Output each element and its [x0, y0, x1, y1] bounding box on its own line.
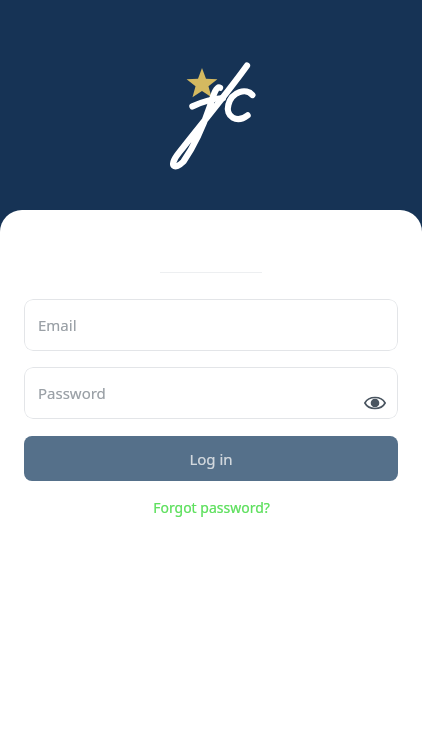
- staticText: Log in: [189, 449, 233, 469]
- button[interactable]: Forgot password?: [0, 494, 422, 520]
- staticText: Email: [38, 315, 77, 335]
- button[interactable]: Show password: [357, 385, 393, 421]
- staticText: Forgot password?: [153, 498, 270, 517]
- button[interactable]: Email: [24, 299, 398, 351]
- button[interactable]: Log in: [24, 436, 398, 481]
- button[interactable]: Password: [24, 367, 398, 419]
- staticText: Password: [38, 383, 106, 403]
